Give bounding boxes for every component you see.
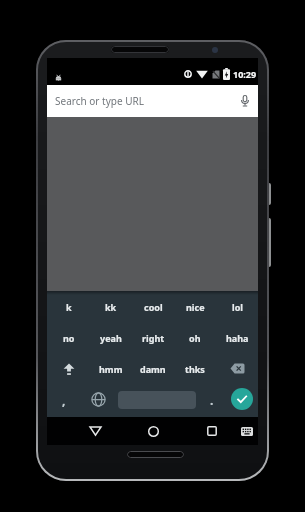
button[interactable]: nice — [174, 291, 216, 322]
staticText: cool — [144, 301, 163, 313]
staticText: lol — [232, 301, 243, 313]
button[interactable] — [47, 353, 90, 384]
button[interactable]: Search or type URL — [47, 85, 258, 117]
button[interactable] — [81, 384, 115, 415]
button[interactable] — [204, 424, 220, 438]
staticText: right — [142, 332, 165, 344]
button[interactable]: hmm — [90, 353, 132, 384]
staticText: 10:29 — [233, 68, 257, 80]
staticText: yeah — [100, 332, 122, 344]
button[interactable]: oh — [174, 322, 216, 353]
staticText: nice — [186, 301, 205, 313]
staticText: kk — [105, 301, 117, 313]
button[interactable]: thks — [174, 353, 216, 384]
button[interactable] — [216, 353, 258, 384]
staticText: . — [210, 392, 214, 408]
staticText: , — [62, 392, 66, 408]
button[interactable]: . — [197, 384, 227, 415]
staticText: no — [63, 332, 75, 344]
staticText: Search or type URL — [55, 94, 144, 108]
button[interactable]: k — [47, 291, 90, 322]
button[interactable]: right — [132, 322, 174, 353]
staticText: thks — [185, 363, 205, 375]
staticText: damn — [140, 363, 166, 375]
button[interactable] — [87, 424, 103, 438]
button[interactable] — [239, 424, 254, 438]
staticText: haha — [226, 332, 249, 344]
button[interactable] — [231, 388, 253, 410]
button[interactable]: haha — [216, 322, 258, 353]
button[interactable]: kk — [90, 291, 132, 322]
button[interactable]: cool — [132, 291, 174, 322]
button[interactable] — [145, 424, 161, 438]
button[interactable]: lol — [216, 291, 258, 322]
button[interactable]: damn — [132, 353, 174, 384]
button[interactable]: no — [47, 322, 90, 353]
button[interactable]: yeah — [90, 322, 132, 353]
button[interactable]: , — [47, 384, 81, 415]
staticText: oh — [189, 332, 201, 344]
staticText: hmm — [99, 363, 123, 375]
staticText: k — [66, 301, 72, 313]
button[interactable] — [239, 95, 251, 107]
